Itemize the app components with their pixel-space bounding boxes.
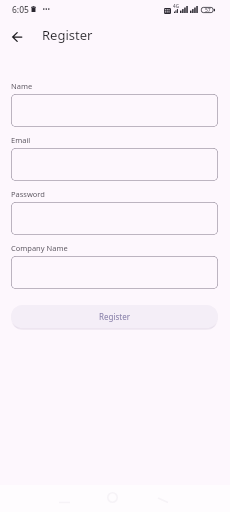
staticText: 4G [173, 3, 179, 9]
button[interactable]: Register [11, 305, 218, 328]
staticText: Register [99, 311, 131, 322]
button[interactable] [11, 202, 218, 235]
staticText: Name [11, 81, 33, 91]
staticText: Password [11, 189, 45, 199]
button[interactable] [11, 256, 218, 289]
button[interactable] [11, 94, 218, 127]
staticText: 57 [205, 7, 211, 13]
button[interactable]: Back [5, 25, 29, 49]
staticText: Email [11, 135, 31, 145]
staticText: 6:05 [12, 4, 29, 16]
staticText: Register [42, 26, 93, 44]
staticText: Company Name [11, 243, 68, 253]
button[interactable] [11, 148, 218, 181]
